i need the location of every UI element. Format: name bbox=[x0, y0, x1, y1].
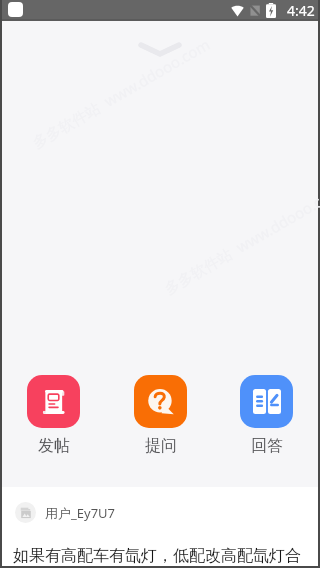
staticText: 如果有高配车有氙灯，低配改高配氙灯合适吗？会不会影响 bbox=[13, 546, 309, 566]
staticText: 回答 bbox=[251, 436, 283, 456]
staticText: 4:42 bbox=[287, 1, 315, 20]
button[interactable]: 用户_Ey7U7 bbox=[15, 502, 305, 523]
button[interactable]: 回答 bbox=[240, 375, 293, 456]
staticText: 发帖 bbox=[38, 436, 70, 456]
staticText: 用户_Ey7U7 bbox=[45, 504, 116, 522]
staticText: 提问 bbox=[145, 436, 177, 456]
staticText: 多多软件站 www.ddooo.com bbox=[160, 180, 320, 298]
button[interactable]: 发帖 bbox=[27, 375, 80, 456]
button[interactable]: 提问 bbox=[134, 375, 187, 456]
